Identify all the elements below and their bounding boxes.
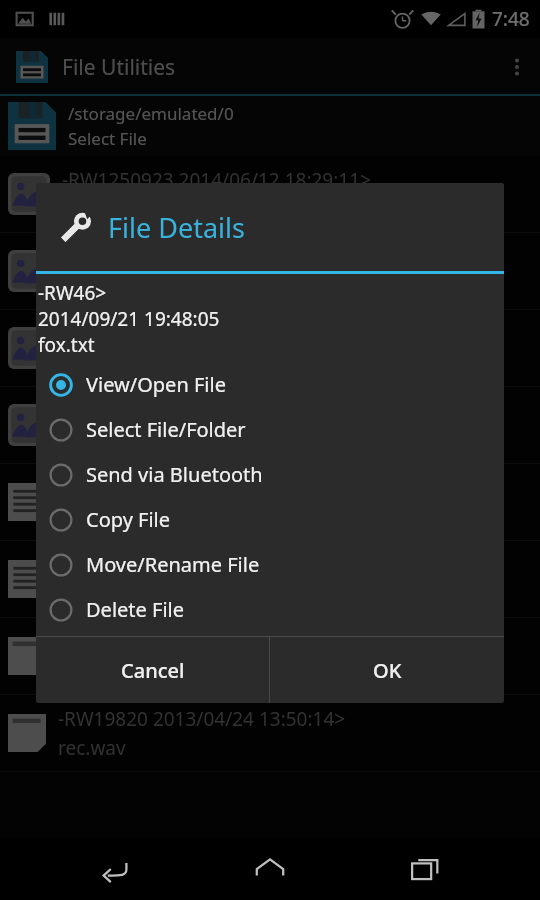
staticText: IMG_174512.jpg bbox=[62, 273, 207, 299]
button[interactable]: Copy File bbox=[36, 497, 504, 542]
staticText: fox.txt bbox=[38, 332, 95, 358]
button[interactable]: Select File/Folder bbox=[36, 407, 504, 452]
staticText: 7:48 bbox=[492, 6, 530, 32]
staticText: Move/Rename File bbox=[86, 551, 260, 578]
staticText: File Utilities bbox=[62, 53, 176, 82]
button[interactable]: Delete File bbox=[36, 587, 504, 632]
button[interactable]: -RW2048 2014/02/11 08:15:02> bbox=[0, 464, 540, 540]
staticText: IMG_151122.jpg bbox=[62, 427, 207, 453]
button[interactable]: View/Open File bbox=[36, 362, 504, 407]
staticText: out.wav bbox=[58, 658, 129, 684]
staticText: /storage/emulated/0 bbox=[68, 102, 234, 125]
staticText: notes.txt bbox=[58, 504, 137, 530]
button[interactable]: -RW19820 2013/04/24 13:50:14> bbox=[0, 695, 540, 771]
staticText: -RW46> bbox=[38, 280, 107, 306]
button[interactable]: -RW1998323 2014/04/18 09:12:33> bbox=[0, 310, 540, 386]
staticText: View/Open File bbox=[86, 371, 226, 398]
staticText: Send via Bluetooth bbox=[86, 461, 263, 488]
button[interactable]: Cancel bbox=[36, 637, 269, 703]
button[interactable]: Move/Rename File bbox=[36, 542, 504, 587]
button[interactable]: /storage/emulated/0 bbox=[0, 96, 540, 156]
staticText: rec.wav bbox=[58, 735, 126, 761]
staticText: -RW1250923 2014/06/12 18:29:11> bbox=[62, 167, 371, 193]
button[interactable]: OK bbox=[270, 637, 504, 703]
button[interactable]: More options bbox=[494, 38, 540, 96]
staticText: IMG_182000.jpg bbox=[62, 196, 207, 222]
staticText: Select File/Folder bbox=[86, 416, 246, 443]
button[interactable]: -RW2110044 2014/03/07 21:47:19> bbox=[0, 387, 540, 463]
staticText: File Details bbox=[108, 209, 245, 246]
staticText: OK bbox=[373, 657, 402, 684]
staticText: -RW640 2013/04/24 13:58:46> bbox=[58, 629, 324, 655]
staticText: -RW1998323 2014/04/18 09:12:33> bbox=[62, 321, 371, 347]
staticText: 2014/09/21 19:48:05 bbox=[38, 306, 220, 332]
button[interactable]: Home bbox=[230, 838, 310, 900]
staticText: home.txt bbox=[58, 581, 139, 607]
staticText: Cancel bbox=[121, 657, 185, 684]
staticText: -RW2048 2014/02/11 08:15:02> bbox=[58, 475, 335, 501]
staticText: Delete File bbox=[86, 596, 184, 623]
button[interactable]: -RW640 2013/04/24 13:58:46> bbox=[0, 618, 540, 694]
button[interactable]: -RW2240512 2014/05/02 11:04:50> bbox=[0, 233, 540, 309]
staticText: Copy File bbox=[86, 506, 171, 533]
staticText: -RW998 2014/01/09 16:44:28> bbox=[58, 552, 324, 578]
staticText: Select File bbox=[68, 127, 147, 150]
button[interactable]: -RW998 2014/01/09 16:44:28> bbox=[0, 541, 540, 617]
button[interactable]: Back bbox=[75, 838, 155, 900]
button[interactable]: Recent apps bbox=[385, 838, 465, 900]
button[interactable]: Send via Bluetooth bbox=[36, 452, 504, 497]
staticText: IMG_165003.jpg bbox=[62, 350, 207, 376]
staticText: -RW19820 2013/04/24 13:50:14> bbox=[58, 706, 346, 732]
button[interactable]: -RW1250923 2014/06/12 18:29:11> bbox=[0, 156, 540, 232]
staticText: -RW2110044 2014/03/07 21:47:19> bbox=[62, 398, 371, 424]
